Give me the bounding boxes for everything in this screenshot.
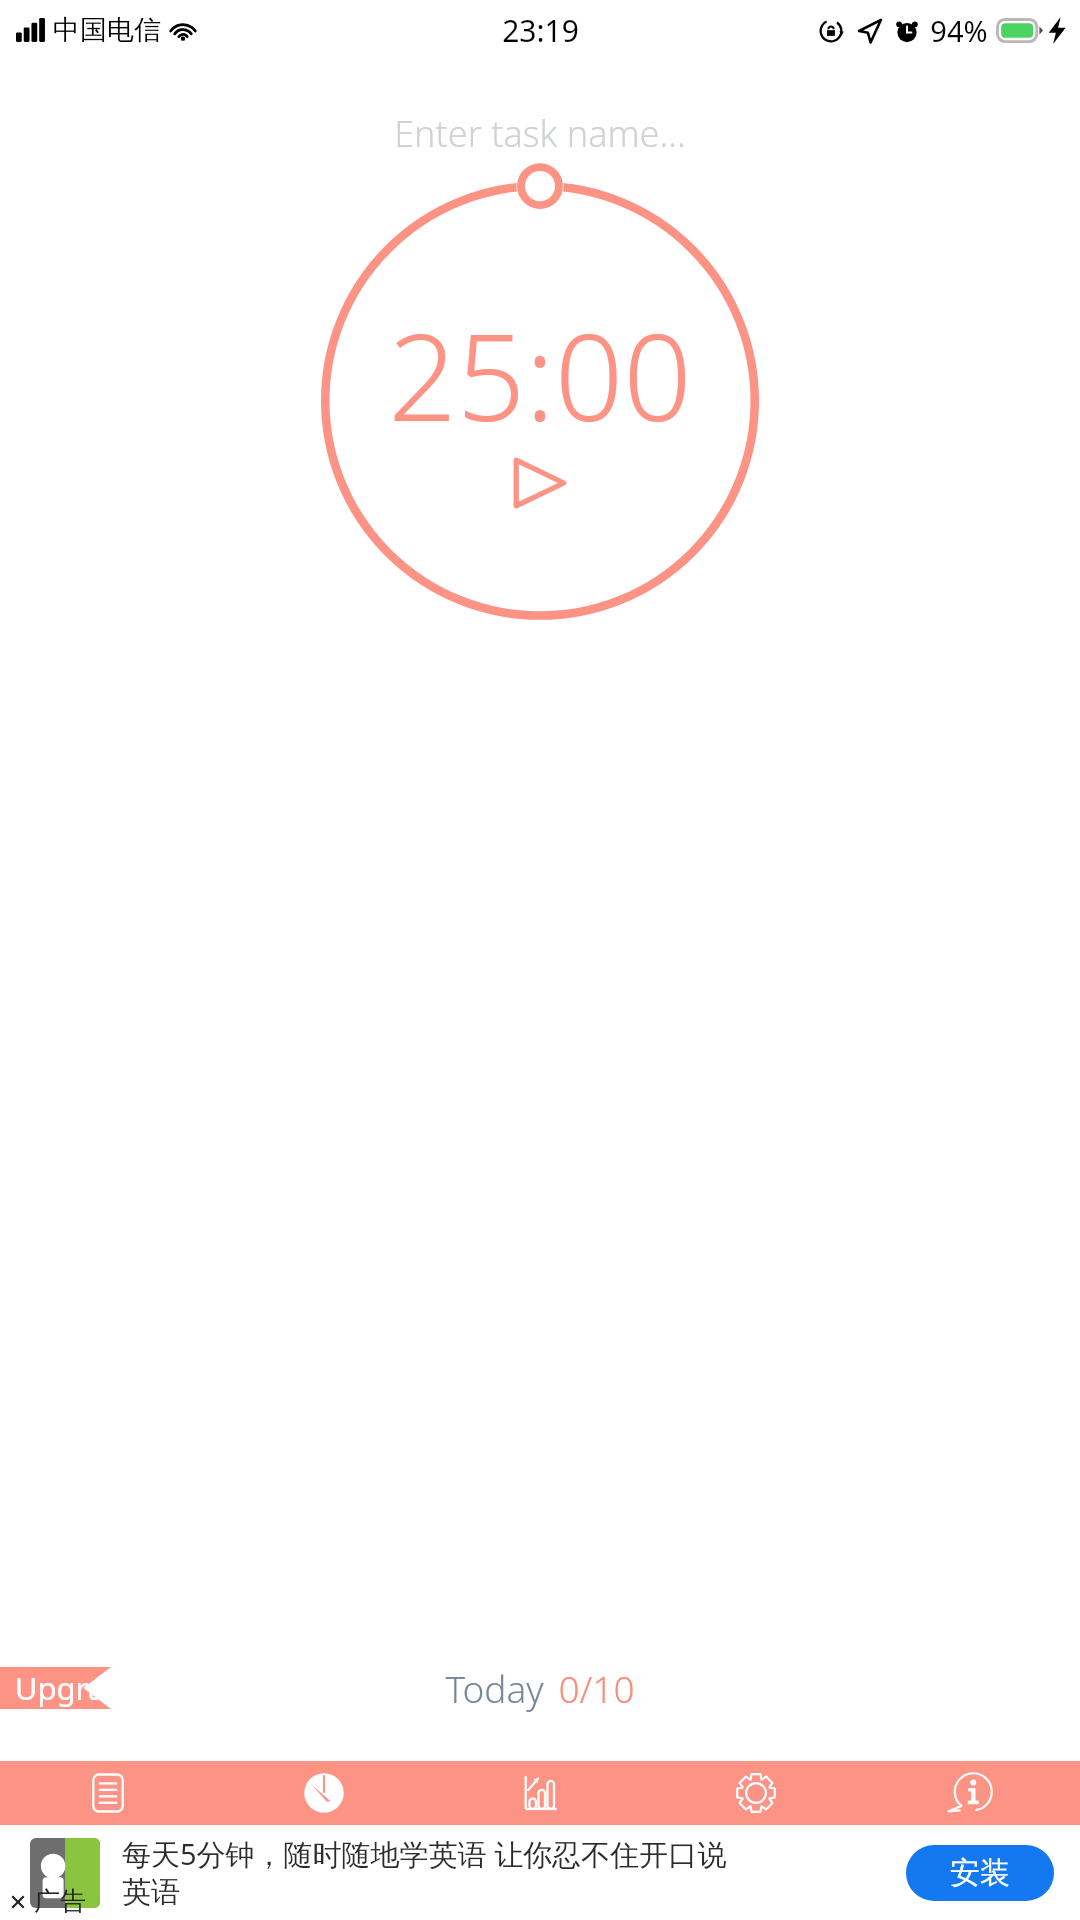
staticText: 安装 [950, 1854, 1010, 1892]
button[interactable]: Enter task name... [0, 98, 1080, 168]
staticText: 广告 [34, 1885, 86, 1918]
button[interactable]: Settings [648, 1761, 864, 1825]
button[interactable]: Upgrade [0, 1667, 111, 1709]
staticText: Upgrade [9, 1667, 111, 1709]
button[interactable]: About [864, 1761, 1080, 1825]
staticText: 每天5分钟，随时随地学英语 让你忍不住开口说 [122, 1834, 727, 1874]
staticText: Enter task name... [394, 109, 686, 158]
button[interactable]: Tasks [0, 1761, 216, 1825]
button[interactable]: Statistics [432, 1761, 648, 1825]
staticText: 23:19 [502, 10, 579, 51]
staticText: 英语 [122, 1874, 180, 1911]
button[interactable]: Start timer [511, 456, 569, 510]
staticText: 94% [930, 11, 988, 50]
staticText: Today [445, 1663, 544, 1713]
staticText: 25:00 [388, 293, 692, 456]
button[interactable]: Timer [216, 1761, 432, 1825]
staticText: 0/10 [558, 1663, 635, 1713]
staticText: 中国电信 [53, 13, 161, 47]
button[interactable] [30, 1838, 100, 1908]
button[interactable]: 安装 [906, 1845, 1054, 1901]
